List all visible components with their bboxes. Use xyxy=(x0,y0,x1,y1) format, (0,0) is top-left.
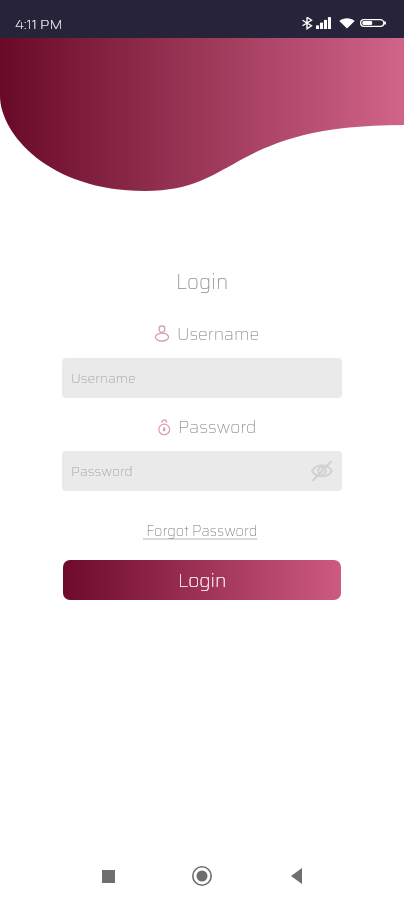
button[interactable]: Username xyxy=(62,358,342,398)
button[interactable]: Forgot Password xyxy=(143,520,261,543)
staticText: 4:11 PM xyxy=(15,13,63,35)
staticText: Login xyxy=(178,565,227,595)
button[interactable]: Login xyxy=(63,560,341,600)
staticText: Username xyxy=(71,368,136,389)
staticText: Password xyxy=(71,461,133,482)
staticText: Password xyxy=(178,413,257,440)
staticText: Login xyxy=(176,266,229,298)
button[interactable]: Recents xyxy=(84,852,132,900)
staticText: Username xyxy=(177,320,260,347)
button[interactable]: Back xyxy=(272,852,320,900)
button[interactable]: Password xyxy=(62,451,342,491)
button[interactable]: Home xyxy=(178,852,226,900)
other: Show password xyxy=(311,460,333,482)
